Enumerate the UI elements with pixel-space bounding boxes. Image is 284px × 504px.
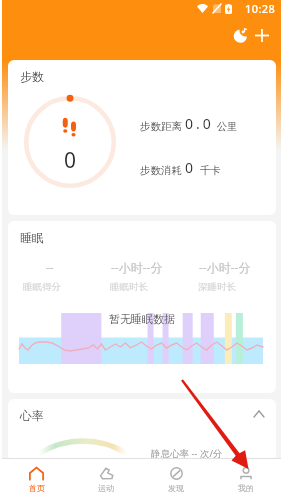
staticText: 暂无睡眠数据	[109, 312, 175, 326]
staticText: 首页	[29, 483, 45, 493]
staticText: 10:28	[245, 1, 276, 16]
staticText: 0	[64, 146, 77, 175]
staticText: --小时--分	[111, 259, 163, 275]
staticText: --	[46, 259, 54, 275]
staticText: 公里	[214, 119, 238, 133]
staticText: 我的	[238, 483, 254, 493]
staticText: --小时--分	[199, 259, 251, 275]
staticText: 步数	[20, 69, 44, 84]
staticText: 心率	[20, 408, 44, 423]
staticText: 步数距离	[140, 119, 185, 133]
staticText: 0.0	[185, 114, 214, 133]
staticText: 静息心率 -- 次/分	[151, 447, 223, 460]
button[interactable]: Sleep music	[229, 24, 251, 46]
button[interactable]: 发现	[141, 459, 211, 500]
button[interactable]: 运动	[71, 459, 141, 500]
staticText: 睡眠时长	[110, 281, 148, 293]
button[interactable]: 我的	[211, 459, 281, 500]
staticText: 步数消耗	[140, 163, 185, 177]
staticText: 睡眠得分	[23, 281, 61, 293]
button[interactable]: Add	[251, 24, 273, 46]
staticText: 千卡	[197, 163, 221, 177]
staticText: 深睡时长	[198, 281, 236, 293]
staticText: 运动	[98, 483, 114, 493]
button[interactable]: Collapse	[250, 405, 268, 423]
staticText: 发现	[168, 483, 184, 493]
staticText: 睡眠	[20, 230, 44, 245]
button[interactable]: 首页	[2, 459, 71, 500]
staticText: 0	[185, 158, 197, 177]
